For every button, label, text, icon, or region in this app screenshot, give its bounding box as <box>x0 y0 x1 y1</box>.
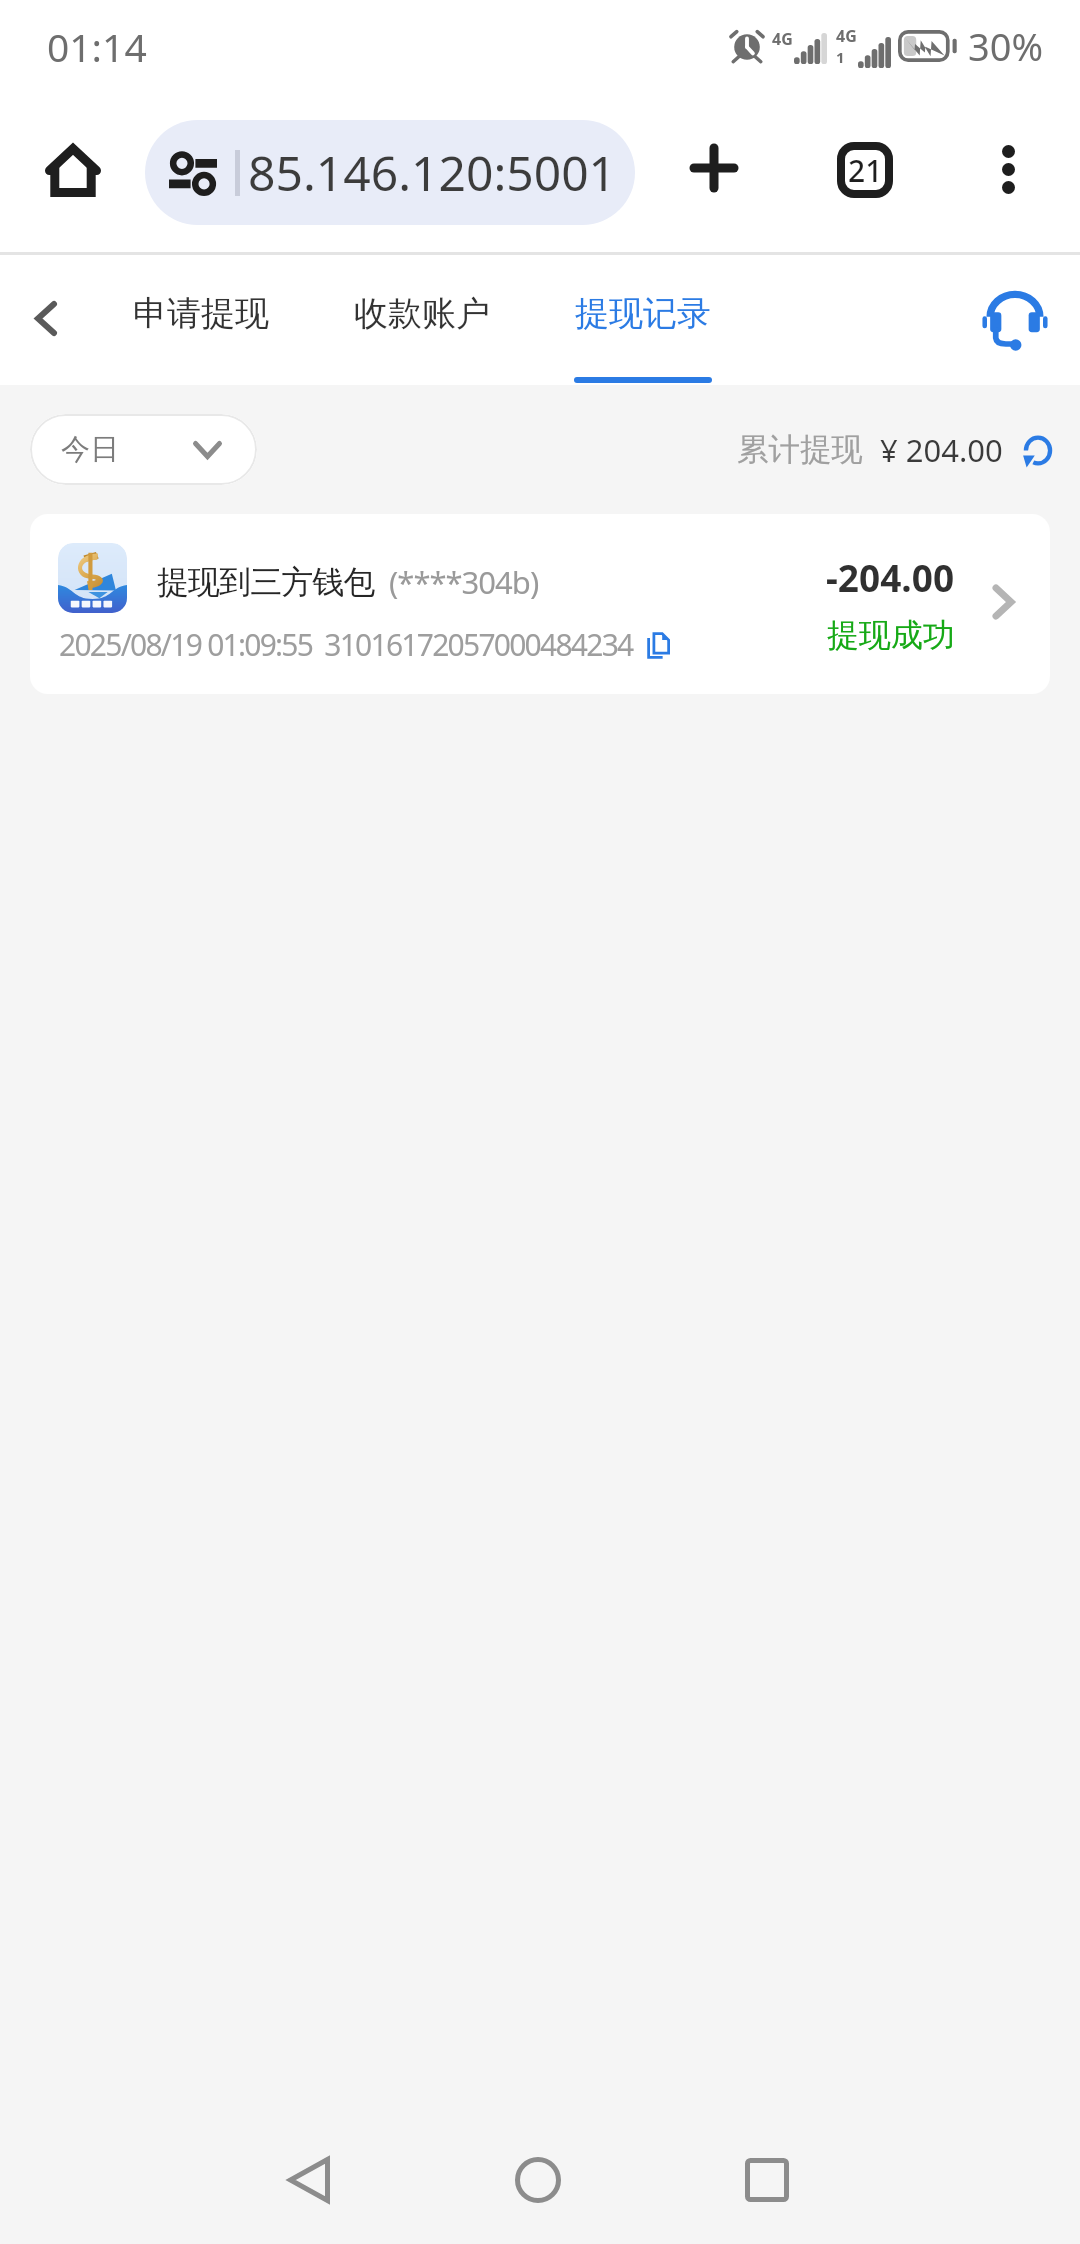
button[interactable]: Copy <box>641 628 675 662</box>
button[interactable]: Home <box>478 2150 598 2210</box>
staticText: 85.146.120:5001 <box>248 140 617 205</box>
button[interactable]: More options <box>948 109 1068 229</box>
button[interactable]: Refresh <box>1021 432 1055 469</box>
staticText: 提现成功 <box>827 615 955 655</box>
button[interactable]: 收款账户 <box>354 255 490 383</box>
button[interactable]: Tabs <box>805 110 925 230</box>
staticText: -204.00 <box>826 552 955 602</box>
staticText: 收款账户 <box>354 292 490 335</box>
button[interactable]: 提现到三方钱包 <box>30 514 1050 694</box>
staticText: 累计提现 <box>737 430 863 470</box>
staticText: 提现到三方钱包 <box>157 562 375 602</box>
staticText: 30% <box>968 20 1044 72</box>
staticText: 4G <box>836 25 857 47</box>
staticText: 今日 <box>61 431 119 468</box>
staticText: 提现记录 <box>575 292 711 335</box>
staticText: ¥ 204.00 <box>880 429 1003 471</box>
staticText: 01:14 <box>47 20 147 73</box>
staticText: 21 <box>848 150 883 191</box>
button[interactable]: Customer service <box>970 275 1060 365</box>
staticText: 2025/08/19 01:09:55 31016172057000484234 <box>59 624 633 665</box>
button[interactable]: 今日 <box>30 414 257 485</box>
staticText: 4G <box>772 28 793 50</box>
button[interactable]: Back <box>249 2150 369 2210</box>
button[interactable]: Recent apps <box>707 2150 827 2210</box>
staticText: (****304b) <box>389 561 539 603</box>
button[interactable]: New tab <box>654 108 774 228</box>
button[interactable]: Home <box>25 121 121 217</box>
button[interactable]: 申请提现 <box>133 255 269 383</box>
button[interactable]: Back <box>1 273 91 363</box>
button[interactable]: 85.146.120:5001 <box>145 120 635 225</box>
button[interactable]: 提现记录 <box>574 255 712 383</box>
staticText: 1 <box>836 47 845 67</box>
staticText: 申请提现 <box>133 292 269 335</box>
